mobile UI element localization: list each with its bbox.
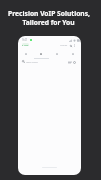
staticText: Active — [24, 44, 29, 46]
button[interactable]: Recents — [33, 51, 49, 57]
button[interactable]: Active status — [22, 43, 29, 46]
button[interactable]: Contacts — [49, 51, 65, 57]
button[interactable]: More options — [73, 44, 76, 47]
staticText: 9:41 — [22, 38, 28, 42]
staticText: Search contacts — [26, 61, 38, 63]
button[interactable]: Favorites — [18, 51, 33, 57]
staticText: Tailored for You — [22, 18, 75, 27]
button[interactable]: Voicemail — [65, 51, 81, 57]
staticText: Precision VoIP Solutions, — [8, 9, 90, 18]
staticText: Account — [60, 44, 68, 47]
button[interactable]: Search contacts — [22, 60, 38, 63]
button[interactable]: Filter — [73, 61, 76, 64]
button[interactable]: Search — [70, 45, 72, 47]
